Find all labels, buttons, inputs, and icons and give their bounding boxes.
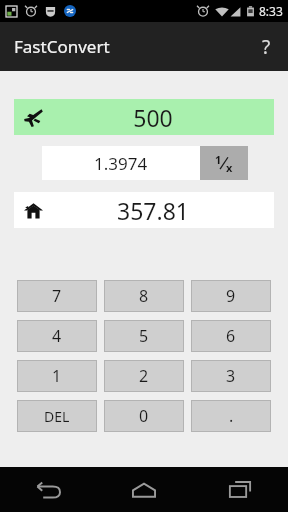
button[interactable]: 8 xyxy=(105,281,183,311)
button[interactable]: 3 xyxy=(192,361,270,391)
button[interactable]: 1 xyxy=(18,361,96,391)
staticText: 1 xyxy=(215,152,222,167)
button[interactable]: 500 xyxy=(14,99,274,135)
button[interactable]: 1.3974 xyxy=(42,146,200,180)
staticText: 7 xyxy=(52,285,62,307)
button[interactable]: 0 xyxy=(105,401,183,431)
staticText: DEL xyxy=(44,407,70,426)
button[interactable]: 357.81 xyxy=(14,192,274,228)
button[interactable]: Back xyxy=(0,467,96,512)
staticText: 6 xyxy=(226,325,236,347)
button[interactable]: Recent apps xyxy=(192,467,288,512)
staticText: 1.3974 xyxy=(94,152,148,175)
staticText: 9 xyxy=(226,285,236,307)
button[interactable]: 5 xyxy=(105,321,183,351)
staticText: 8:33 xyxy=(259,3,283,19)
staticText: FastConvert xyxy=(14,35,110,58)
staticText: 8 xyxy=(139,285,149,307)
staticText: 3 xyxy=(226,365,236,387)
staticText: 2 xyxy=(139,365,149,387)
staticText: 4 xyxy=(52,325,62,347)
button[interactable]: 2 xyxy=(105,361,183,391)
staticText: 5 xyxy=(139,325,149,347)
button[interactable]: DEL xyxy=(18,401,96,431)
button[interactable]: 4 xyxy=(18,321,96,351)
button[interactable]: Home xyxy=(96,467,192,512)
staticText: . xyxy=(229,405,234,427)
staticText: 1 xyxy=(52,365,62,387)
button[interactable]: 9 xyxy=(192,281,270,311)
button[interactable]: Help xyxy=(244,22,288,71)
staticText: ? xyxy=(262,34,271,60)
staticText: x xyxy=(226,160,233,175)
button[interactable]: 6 xyxy=(192,321,270,351)
staticText: 357.81 xyxy=(42,195,264,226)
button[interactable]: 7 xyxy=(18,281,96,311)
button[interactable]: Invert rate xyxy=(200,146,248,180)
button[interactable]: . xyxy=(192,401,270,431)
staticText: 0 xyxy=(139,405,149,427)
staticText: 500 xyxy=(42,102,264,133)
